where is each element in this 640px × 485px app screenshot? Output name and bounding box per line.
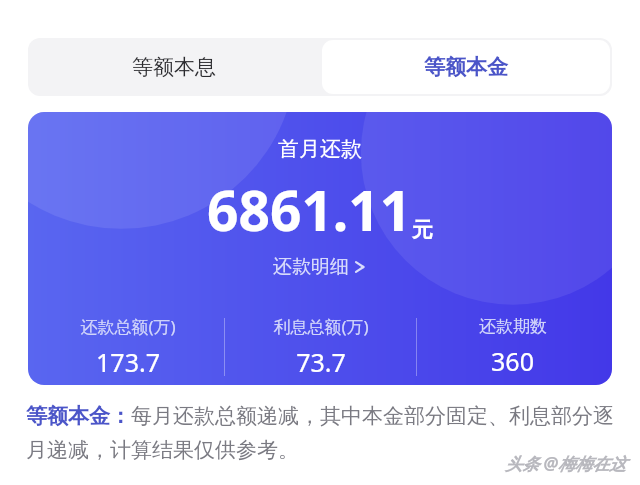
other: Repayment details [355, 259, 367, 275]
staticText: 73.7 [296, 345, 346, 379]
staticText: 173.7 [96, 345, 160, 379]
staticText: 首月还款 [278, 136, 362, 162]
staticText: 6861.11 [207, 172, 412, 247]
staticText: 还款明细 [273, 255, 349, 279]
staticText: 等额本金 [424, 54, 508, 80]
staticText: 利息总额(万) [273, 315, 369, 338]
button[interactable]: 还款明细 [267, 253, 373, 281]
staticText: 等额本金：每月还款总额递减，其中本金部分固定、利息部分逐月递减，计算结果仅供参考… [26, 403, 614, 464]
staticText: 头条 @梅梅在这 [505, 452, 626, 475]
staticText: 还款期数 [479, 316, 547, 337]
staticText: 还款总额(万) [80, 315, 176, 338]
button[interactable]: 等额本金 [322, 40, 610, 94]
staticText: 元 [412, 217, 433, 243]
staticText: 360 [491, 344, 534, 378]
button[interactable]: 等额本息 [28, 38, 320, 96]
staticText: 等额本息 [132, 54, 216, 80]
